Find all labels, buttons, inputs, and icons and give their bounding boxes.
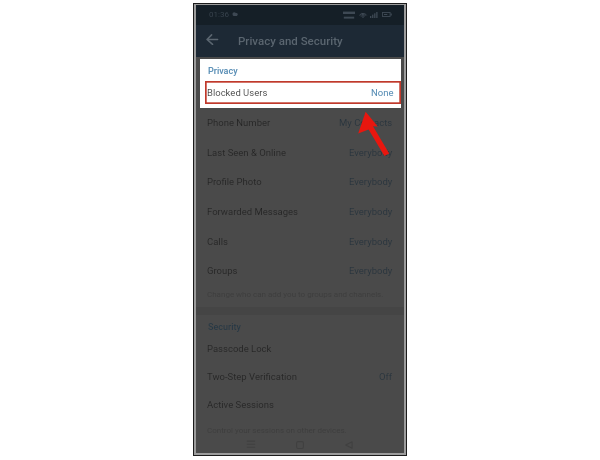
staticText: Everybody	[349, 147, 393, 158]
staticText: Privacy	[208, 66, 238, 77]
button[interactable]: Back	[201, 28, 223, 50]
button[interactable]: Blocked Users	[205, 81, 401, 104]
staticText: Passcode Lock	[207, 343, 272, 354]
staticText: Groups	[207, 265, 238, 276]
staticText: My Contacts	[339, 117, 393, 128]
staticText: Calls	[207, 236, 228, 247]
button[interactable]: Profile Photo	[196, 166, 404, 196]
staticText: Change who can add you to groups and cha…	[207, 290, 384, 299]
staticText: Phone Number	[207, 117, 271, 128]
button[interactable]: Groups	[196, 255, 404, 285]
button[interactable]: Last Seen & Online	[196, 137, 404, 167]
staticText: Forwarded Messages	[207, 206, 298, 217]
staticText: 01:36	[209, 10, 229, 19]
button[interactable]: Calls	[196, 226, 404, 256]
button[interactable]: Recent apps	[240, 433, 262, 455]
button[interactable]: Two-Step Verification	[196, 361, 404, 391]
staticText: Everybody	[349, 176, 393, 187]
staticText: Everybody	[349, 236, 393, 247]
staticText: Last Seen & Online	[207, 147, 286, 158]
button[interactable]: Phone Number	[196, 107, 404, 137]
staticText: None	[371, 87, 394, 98]
button[interactable]: Passcode Lock	[196, 333, 404, 363]
staticText: Everybody	[349, 265, 393, 276]
staticText: Two-Step Verification	[207, 371, 297, 382]
staticText: Security	[208, 322, 241, 333]
staticText: Everybody	[349, 206, 393, 217]
staticText: Blocked Users	[207, 87, 268, 98]
staticText: Control your sessions on other devices.	[207, 426, 347, 435]
staticText: Off	[379, 371, 393, 382]
button[interactable]: Back	[338, 434, 360, 456]
button[interactable]: Home	[289, 434, 311, 456]
button[interactable]: Forwarded Messages	[196, 196, 404, 226]
staticText: Active Sessions	[207, 399, 274, 410]
button[interactable]: Active Sessions	[196, 389, 404, 419]
staticText: Profile Photo	[207, 176, 262, 187]
staticText: Privacy and Security	[238, 34, 343, 47]
